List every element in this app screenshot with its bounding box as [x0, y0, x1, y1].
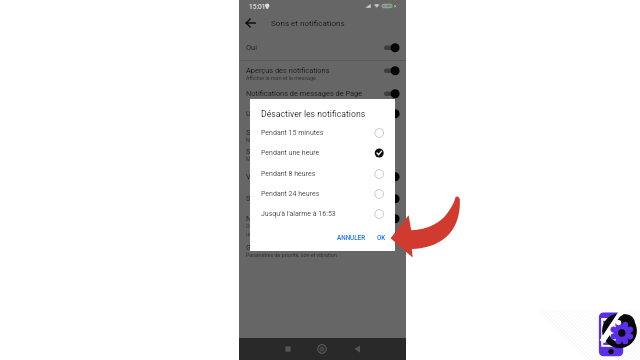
- button[interactable]: Notifications de messages de Page: [239, 84, 406, 103]
- button[interactable]: Vibreur: [239, 167, 406, 186]
- button[interactable]: Son des messages: [239, 142, 406, 166]
- staticText: Sons dans l'application: [246, 194, 322, 203]
- staticText: Jusqu'à l'alarme à 16:53: [261, 210, 336, 218]
- staticText: Mon son par défaut: [246, 137, 293, 143]
- staticText: Mon son par défaut: [246, 156, 293, 162]
- button[interactable]: Back: [244, 16, 258, 30]
- staticText: Aperçus des notifications: [246, 66, 330, 75]
- staticText: Sons et notifications: [271, 18, 345, 27]
- button[interactable]: Pendant 15 minutes: [250, 123, 395, 143]
- button[interactable]: Aperçus des notifications: [239, 61, 406, 85]
- staticText: Ne pas déranger: [246, 214, 300, 223]
- button[interactable]: Son des notifications: [239, 123, 406, 147]
- button[interactable]: Recent apps: [277, 338, 299, 360]
- button[interactable]: App settings logo: [596, 310, 640, 358]
- staticText: Notifications de messages de Page: [246, 89, 363, 98]
- button[interactable]: Pendant une heure: [250, 143, 395, 163]
- button[interactable]: Jusqu'à l'alarme à 16:53: [250, 204, 395, 224]
- staticText: Son des notifications: [246, 128, 316, 137]
- button[interactable]: Home: [311, 338, 333, 360]
- staticText: Pendant 15 minutes: [261, 129, 324, 137]
- button[interactable]: ANNULER: [337, 230, 366, 246]
- button[interactable]: Ne pas déranger: [239, 209, 406, 237]
- button[interactable]: Sons dans l'application: [239, 189, 406, 208]
- staticText: Options de notification uniquement prior…: [246, 223, 301, 237]
- staticText: Pendant 8 heures: [261, 170, 316, 178]
- staticText: Général: [246, 243, 272, 252]
- staticText: Paramètres de priorité, son et vibration: [246, 252, 337, 258]
- staticText: Oui: [246, 43, 257, 52]
- button[interactable]: OK: [377, 230, 386, 246]
- staticText: Afficher le nom et le message: [246, 75, 316, 81]
- staticText: OK: [377, 234, 386, 241]
- button[interactable]: Back: [346, 338, 368, 360]
- staticText: Désactiver les notifications: [261, 109, 366, 119]
- button[interactable]: Utiliser les sons du téléphone: [239, 104, 406, 123]
- staticText: Utiliser les sons du téléphone: [246, 109, 343, 118]
- staticText: Vibreur: [246, 172, 270, 181]
- staticText: Pendant une heure: [261, 149, 320, 157]
- button[interactable]: Pendant 24 heures: [250, 184, 395, 204]
- button[interactable]: Général: [239, 238, 406, 262]
- button[interactable]: Pendant 8 heures: [250, 164, 395, 184]
- staticText: ANNULER: [337, 234, 366, 241]
- staticText: 15:01: [249, 3, 266, 11]
- staticText: Pendant 24 heures: [261, 190, 320, 198]
- staticText: Son des messages: [246, 147, 309, 156]
- button[interactable]: Oui: [239, 38, 406, 58]
